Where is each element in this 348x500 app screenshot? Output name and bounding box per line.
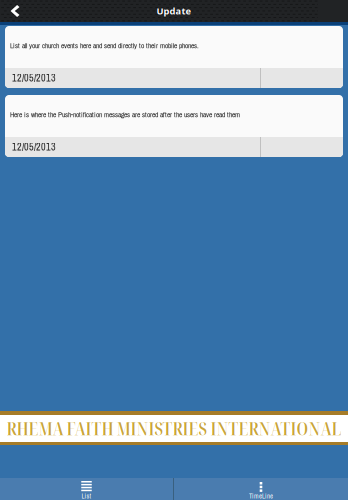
staticText: Here is where the Push-notification mess…: [10, 110, 240, 119]
button[interactable]: TimeLine: [174, 478, 348, 500]
staticText: 12/05/2013: [12, 140, 56, 154]
staticText: TimeLine: [249, 492, 273, 500]
button[interactable]: Here is where the Push-notification mess…: [5, 95, 343, 157]
staticText: RHEMA FAITH MINISTRIES INTERNATIONAL: [6, 417, 341, 440]
button[interactable]: List all your church events here and sen…: [5, 26, 343, 88]
staticText: 12/05/2013: [12, 71, 56, 85]
button[interactable]: List: [0, 478, 173, 500]
button[interactable]: Back: [0, 0, 30, 22]
staticText: List all your church events here and sen…: [10, 41, 199, 50]
staticText: List: [81, 492, 91, 500]
staticText: Update: [156, 5, 191, 17]
